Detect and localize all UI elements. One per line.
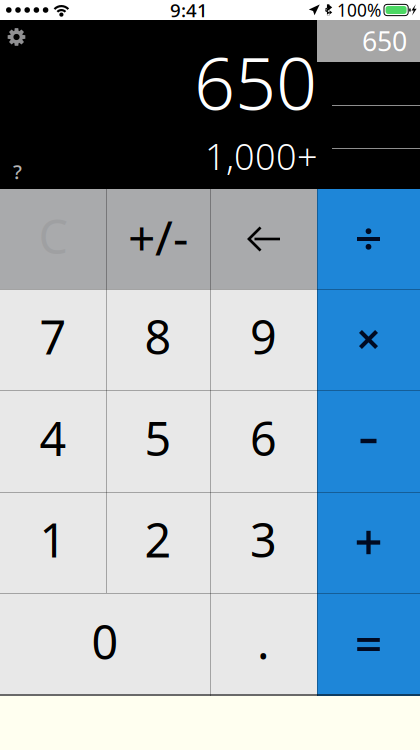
staticText: 9:41 bbox=[170, 0, 208, 22]
button[interactable]: 7 bbox=[0, 289, 106, 390]
staticText: 7 bbox=[39, 305, 66, 367]
staticText: 1 bbox=[39, 508, 66, 570]
staticText: 2 bbox=[144, 508, 171, 570]
staticText: . bbox=[257, 610, 270, 672]
button[interactable]: 1 bbox=[0, 492, 106, 593]
staticText: +/- bbox=[128, 205, 188, 269]
button[interactable]: Plus minus bbox=[106, 189, 210, 289]
button[interactable]: 6 bbox=[210, 390, 317, 492]
staticText: 5 bbox=[144, 407, 171, 469]
button[interactable]: 4 bbox=[0, 390, 106, 492]
button[interactable]: Divide bbox=[317, 189, 420, 289]
staticText: C bbox=[38, 205, 67, 267]
staticText: 6 bbox=[250, 407, 277, 469]
button[interactable]: Multiply bbox=[317, 289, 420, 390]
staticText: 1,000+ bbox=[205, 132, 318, 180]
button[interactable]: Settings bbox=[0, 20, 38, 58]
button[interactable]: 5 bbox=[106, 390, 210, 492]
staticText: 8 bbox=[144, 305, 171, 367]
staticText: 650 bbox=[194, 34, 317, 130]
staticText: 650 bbox=[362, 23, 407, 59]
button[interactable]: Add bbox=[317, 492, 420, 593]
button[interactable]: Help bbox=[0, 156, 34, 186]
staticText: 3 bbox=[250, 508, 277, 570]
button[interactable]: Subtract bbox=[317, 390, 420, 492]
button[interactable]: 8 bbox=[106, 289, 210, 390]
button[interactable]: . bbox=[210, 593, 317, 696]
staticText: 100% bbox=[337, 0, 381, 21]
button[interactable]: 0 bbox=[0, 593, 210, 696]
button[interactable]: 3 bbox=[210, 492, 317, 593]
button[interactable]: 2 bbox=[106, 492, 210, 593]
button[interactable]: Delete bbox=[210, 189, 317, 289]
staticText: 0 bbox=[91, 610, 118, 672]
staticText: 4 bbox=[39, 407, 66, 469]
button[interactable]: Equals bbox=[317, 593, 420, 696]
staticText: ? bbox=[13, 158, 22, 185]
button[interactable]: 9 bbox=[210, 289, 317, 390]
staticText: 9 bbox=[250, 305, 277, 367]
